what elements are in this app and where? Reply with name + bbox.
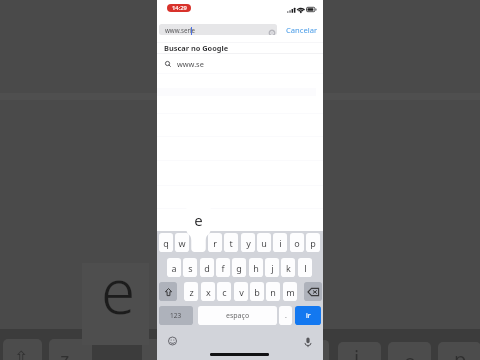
- button[interactable]: n: [266, 282, 280, 301]
- staticText: r: [213, 237, 217, 249]
- button[interactable]: Go: [295, 306, 321, 325]
- button[interactable]: d: [200, 258, 214, 277]
- staticText: w: [178, 237, 186, 249]
- button[interactable]: x: [201, 282, 215, 301]
- button[interactable]: o: [290, 233, 304, 252]
- staticText: i: [279, 237, 282, 249]
- staticText: t: [229, 237, 233, 249]
- button[interactable]: Cancelar: [284, 24, 320, 35]
- staticText: j: [271, 262, 274, 274]
- button[interactable]: p: [306, 233, 320, 252]
- button[interactable]: j: [265, 258, 279, 277]
- button[interactable]: espaço: [198, 306, 277, 325]
- staticText: espaço: [226, 311, 250, 321]
- staticText: n: [270, 286, 276, 298]
- button[interactable]: m: [283, 282, 297, 301]
- staticText: p: [310, 237, 316, 249]
- staticText: j: [354, 344, 360, 360]
- button[interactable]: Clear text: [269, 30, 275, 35]
- button[interactable]: v: [234, 282, 248, 301]
- staticText: d: [204, 262, 210, 274]
- staticText: Cancelar: [286, 25, 318, 35]
- staticText: c: [222, 286, 227, 298]
- staticText: y: [246, 237, 251, 249]
- staticText: l: [304, 262, 307, 274]
- staticText: a: [171, 262, 177, 274]
- staticText: g: [236, 262, 242, 274]
- button[interactable]: u: [257, 233, 271, 252]
- button[interactable]: Shift: [159, 282, 177, 301]
- button[interactable]: h: [249, 258, 263, 277]
- button[interactable]: s: [183, 258, 197, 277]
- staticText: b: [254, 286, 260, 298]
- staticText: Buscar no Google: [164, 43, 229, 53]
- button[interactable]: y: [241, 233, 255, 252]
- button[interactable]: i: [273, 233, 287, 252]
- button[interactable]: q: [159, 233, 173, 252]
- staticText: .: [285, 311, 287, 321]
- staticText: v: [239, 286, 244, 298]
- button[interactable]: w: [175, 233, 189, 252]
- staticText: f: [221, 262, 225, 274]
- button[interactable]: www.se: [157, 55, 323, 72]
- staticText: m: [286, 286, 295, 298]
- button[interactable]: www.serie: [159, 24, 277, 35]
- staticText: ir: [306, 311, 311, 321]
- button[interactable]: f: [216, 258, 230, 277]
- staticText: p: [454, 346, 467, 360]
- button[interactable]: r: [208, 233, 222, 252]
- staticText: 123: [170, 311, 182, 320]
- staticText: z: [189, 286, 194, 298]
- button[interactable]: a: [167, 258, 181, 277]
- staticText: e: [194, 210, 203, 230]
- button[interactable]: c: [217, 282, 231, 301]
- staticText: q: [163, 237, 169, 249]
- button[interactable]: Backspace: [304, 282, 322, 301]
- staticText: 14:29: [172, 4, 187, 12]
- staticText: ⇧: [14, 347, 30, 360]
- staticText: www.se: [177, 59, 204, 69]
- button[interactable]: t: [224, 233, 238, 252]
- button[interactable]: k: [281, 258, 295, 277]
- staticText: e: [101, 248, 136, 332]
- staticText: h: [253, 262, 259, 274]
- staticText: www.serie: [165, 26, 196, 34]
- staticText: s: [188, 262, 193, 274]
- staticText: z: [60, 346, 70, 360]
- staticText: o: [404, 348, 417, 360]
- button[interactable]: g: [232, 258, 246, 277]
- button[interactable]: .: [279, 306, 292, 325]
- button[interactable]: b: [250, 282, 264, 301]
- button[interactable]: 123: [159, 306, 193, 325]
- button[interactable]: l: [298, 258, 312, 277]
- button[interactable]: Dictate: [304, 337, 312, 348]
- button[interactable]: Emoji: [168, 336, 177, 346]
- staticText: u: [261, 237, 267, 249]
- staticText: o: [294, 237, 300, 249]
- staticText: k: [286, 262, 291, 274]
- button[interactable]: z: [184, 282, 198, 301]
- staticText: x: [206, 286, 211, 298]
